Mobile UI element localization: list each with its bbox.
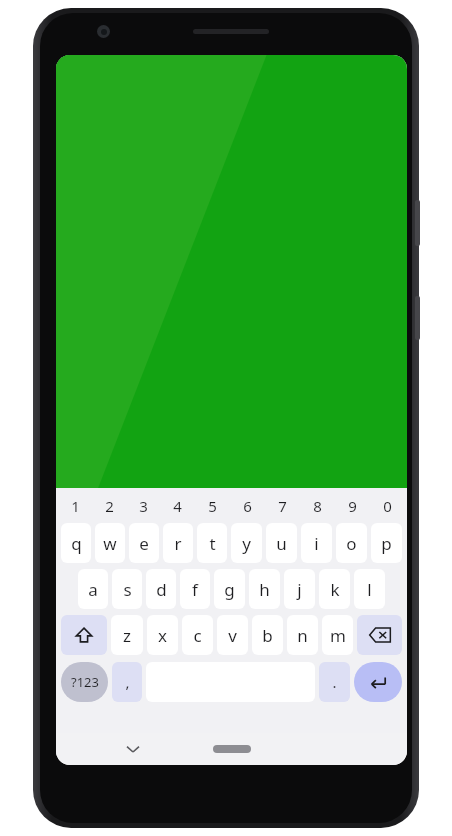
staticText: k [330, 578, 340, 601]
button[interactable]: , [112, 662, 142, 702]
button[interactable]: 9 [335, 492, 370, 520]
staticText: h [259, 578, 270, 601]
staticText: x [158, 624, 167, 647]
staticText: b [262, 624, 273, 647]
staticText: a [88, 578, 98, 601]
staticText: 5 [208, 496, 217, 516]
button[interactable]: v [217, 615, 248, 655]
button[interactable]: Enter [354, 662, 402, 702]
staticText: j [297, 578, 302, 601]
button[interactable]: 1 [58, 492, 92, 520]
staticText: , [125, 672, 130, 692]
staticText: 3 [139, 496, 148, 516]
button[interactable]: 6 [230, 492, 265, 520]
staticText: s [123, 578, 132, 601]
button[interactable]: p [371, 523, 402, 563]
staticText: l [367, 578, 372, 601]
staticText: u [276, 532, 287, 555]
button[interactable]: 4 [160, 492, 195, 520]
button[interactable]: z [111, 615, 143, 655]
button[interactable]: r [163, 523, 193, 563]
button[interactable]: h [249, 569, 280, 609]
staticText: 4 [173, 496, 182, 516]
button[interactable]: 7 [265, 492, 300, 520]
staticText: z [123, 624, 131, 647]
staticText: o [346, 532, 357, 555]
button[interactable]: 0 [370, 492, 405, 520]
button[interactable]: l [354, 569, 385, 609]
button[interactable]: 2 [92, 492, 126, 520]
button[interactable]: j [284, 569, 315, 609]
button[interactable]: Backspace [357, 615, 402, 655]
staticText: w [103, 532, 117, 555]
staticText: f [192, 578, 198, 601]
staticText: c [193, 624, 202, 647]
button[interactable]: ?123 [61, 662, 108, 702]
staticText: p [381, 532, 392, 555]
staticText: n [297, 624, 308, 647]
staticText: 7 [278, 496, 287, 516]
button[interactable]: 3 [126, 492, 160, 520]
staticText: v [228, 624, 237, 647]
staticText: q [71, 532, 82, 555]
staticText: m [330, 624, 346, 647]
button[interactable]: u [266, 523, 297, 563]
button[interactable]: Shift [61, 615, 107, 655]
staticText: t [209, 532, 216, 555]
staticText: 8 [313, 496, 322, 516]
button[interactable]: 8 [300, 492, 335, 520]
button[interactable]: t [197, 523, 227, 563]
button[interactable]: e [129, 523, 159, 563]
button[interactable]: k [319, 569, 350, 609]
staticText: e [139, 532, 149, 555]
staticText: r [174, 532, 182, 555]
staticText: 1 [71, 496, 80, 516]
button[interactable]: x [147, 615, 178, 655]
staticText: ?123 [71, 673, 99, 691]
staticText: i [314, 532, 319, 555]
button[interactable]: n [287, 615, 318, 655]
staticText: d [156, 578, 167, 601]
button[interactable]: g [214, 569, 245, 609]
button[interactable]: i [301, 523, 332, 563]
staticText: 0 [383, 496, 392, 516]
staticText: 2 [105, 496, 114, 516]
staticText: 6 [243, 496, 252, 516]
button[interactable]: q [61, 523, 91, 563]
staticText: y [242, 532, 251, 555]
button[interactable]: s [112, 569, 142, 609]
button[interactable]: w [95, 523, 125, 563]
button[interactable]: d [146, 569, 176, 609]
button[interactable]: o [336, 523, 367, 563]
button[interactable]: . [319, 662, 350, 702]
button[interactable]: a [78, 569, 108, 609]
button[interactable]: Home [213, 745, 251, 753]
staticText: . [332, 672, 337, 692]
button[interactable]: m [322, 615, 353, 655]
button[interactable]: Hide keyboard [120, 736, 146, 762]
button[interactable]: f [180, 569, 210, 609]
button[interactable]: c [182, 615, 213, 655]
button[interactable]: 5 [195, 492, 230, 520]
staticText: 9 [348, 496, 357, 516]
button[interactable]: b [252, 615, 283, 655]
staticText: g [224, 578, 235, 601]
button[interactable]: y [231, 523, 262, 563]
